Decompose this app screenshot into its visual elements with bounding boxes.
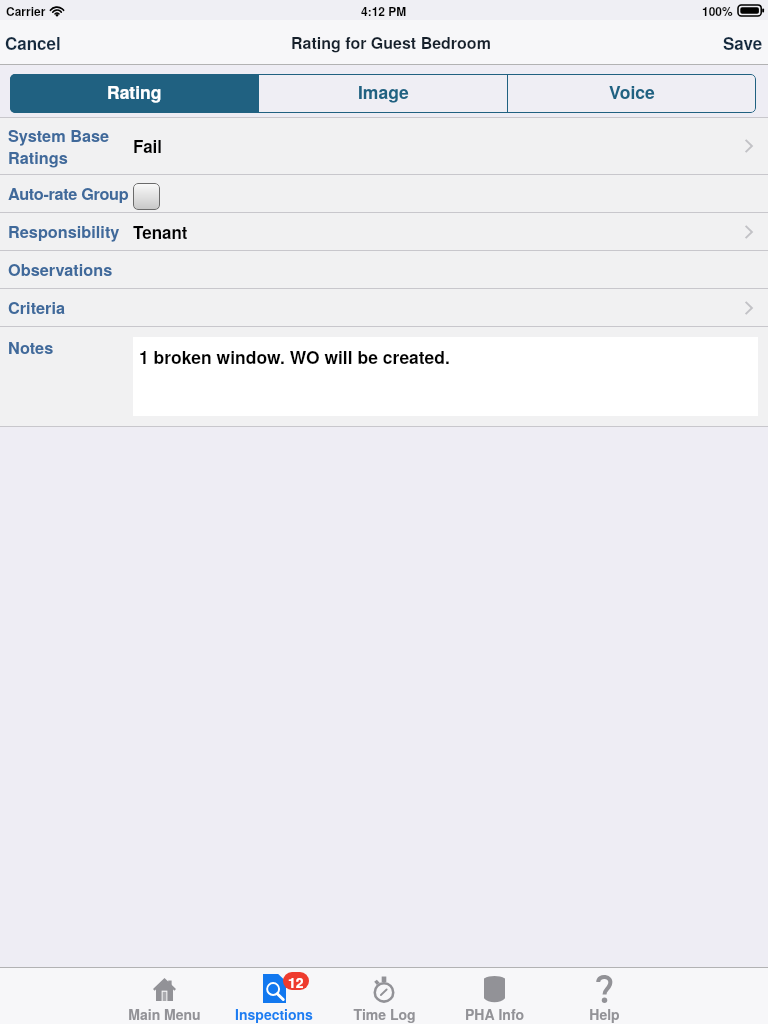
staticText: 4:12 PM	[361, 2, 407, 19]
staticText: Voice	[609, 79, 655, 104]
staticText: Rating for Guest Bedroom	[291, 31, 491, 54]
staticText: 100%	[702, 2, 733, 19]
button[interactable]: 12	[219, 968, 329, 1024]
button[interactable]: System Base Ratings	[0, 118, 768, 174]
staticText: Image	[358, 79, 409, 104]
staticText: Inspections	[235, 1004, 313, 1024]
button[interactable]: Criteria	[0, 289, 768, 326]
button[interactable]: Help	[549, 968, 659, 1024]
staticText: Fail	[133, 134, 163, 158]
staticText: 12	[288, 972, 304, 990]
button[interactable]: Auto-rate Group checkbox	[133, 183, 160, 210]
button[interactable]: Save	[713, 20, 768, 65]
staticText: PHA Info	[465, 1004, 524, 1024]
staticText: Notes	[8, 336, 54, 359]
staticText: Save	[723, 31, 763, 55]
staticText: Rating	[107, 79, 162, 104]
staticText: Cancel	[5, 31, 61, 55]
button[interactable]: 1 broken window. WO will be created.	[133, 337, 758, 416]
staticText: Main Menu	[128, 1004, 201, 1024]
button[interactable]: Time Log	[329, 968, 439, 1024]
button[interactable]: Cancel	[0, 20, 71, 65]
staticText: Observations	[8, 258, 113, 281]
staticText: System Base Ratings	[8, 124, 110, 169]
button[interactable]: Voice	[508, 74, 756, 113]
staticText: Criteria	[8, 296, 65, 319]
button[interactable]: Image	[259, 74, 507, 113]
button[interactable]: PHA Info	[439, 968, 549, 1024]
button[interactable]: Rating	[10, 74, 258, 113]
button[interactable]: Observations	[0, 251, 768, 288]
staticText: Help	[589, 1004, 620, 1024]
staticText: Responsibility	[8, 220, 120, 243]
staticText: Carrier	[6, 2, 46, 19]
button[interactable]: Main Menu	[109, 968, 219, 1024]
staticText: Tenant	[133, 220, 188, 244]
staticText: 1 broken window. WO will be created.	[139, 344, 450, 369]
staticText: Time Log	[353, 1004, 416, 1024]
staticText: Auto-rate Group	[8, 182, 129, 205]
button[interactable]: Responsibility	[0, 213, 768, 250]
